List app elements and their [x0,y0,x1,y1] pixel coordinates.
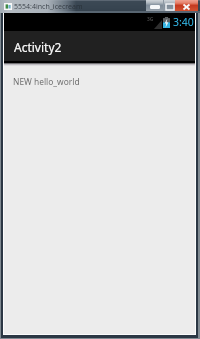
button[interactable]: Maximize [164,0,175,11]
staticText: NEW hello_world [13,76,80,87]
button[interactable]: Minimize [146,0,163,11]
staticText: Activity2 [14,39,62,55]
staticText: 3G [147,16,154,23]
staticText: 5554:4inch_icecream [14,2,83,12]
button[interactable]: Close [175,0,198,11]
staticText: 3:40 [173,15,194,29]
